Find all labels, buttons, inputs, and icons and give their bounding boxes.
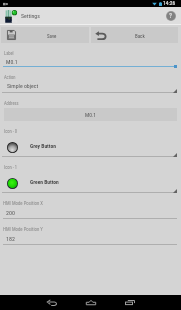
- staticText: Action: [4, 75, 16, 80]
- staticText: HMI Mode Position X: [3, 201, 43, 207]
- button[interactable]: M0.1: [4, 108, 177, 121]
- staticText: Settings: [21, 13, 40, 20]
- staticText: 182: [6, 235, 15, 242]
- staticText: Label: [4, 51, 14, 56]
- staticText: Grey Button: [30, 143, 56, 149]
- staticText: Green Button: [30, 179, 59, 185]
- button[interactable]: Grey Button: [0, 137, 181, 155]
- button[interactable]: Save: [1, 27, 89, 43]
- staticText: Icon - 0: [4, 129, 18, 134]
- button[interactable]: Help: [164, 9, 178, 23]
- button[interactable]: Recents: [110, 295, 149, 310]
- staticText: 14:26: [163, 0, 176, 6]
- button[interactable]: Simple object: [0, 82, 181, 93]
- staticText: 200: [6, 209, 15, 216]
- button[interactable]: Home: [71, 295, 110, 310]
- button[interactable]: Green Button: [0, 173, 181, 191]
- staticText: M0.1: [6, 59, 18, 66]
- staticText: ?: [169, 12, 173, 20]
- staticText: Icon - 1: [4, 165, 18, 170]
- staticText: Address: [4, 101, 19, 106]
- staticText: HMI Mode Position Y: [3, 227, 43, 233]
- staticText: M0.1: [85, 112, 97, 118]
- button[interactable]: Back: [91, 27, 178, 43]
- staticText: Back: [135, 33, 145, 39]
- staticText: Simple object: [7, 83, 39, 90]
- button[interactable]: Back: [32, 295, 71, 310]
- staticText: Save: [47, 33, 57, 39]
